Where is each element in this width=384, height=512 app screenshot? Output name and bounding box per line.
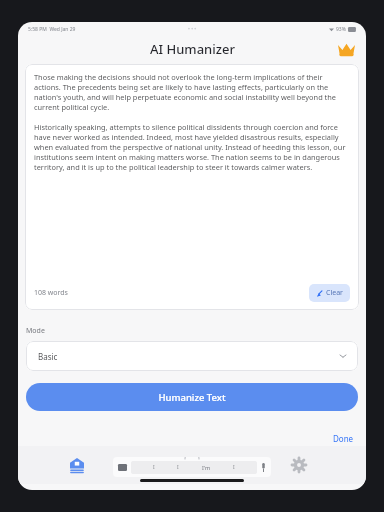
button[interactable]: Home <box>66 454 88 476</box>
staticText: Historically speaking, attempts to silen… <box>34 122 350 172</box>
button[interactable]: Those making the decisions should not ov… <box>25 64 359 310</box>
staticText: I'm <box>202 464 211 471</box>
staticText: 5:58 PM Wed Jan 29 <box>28 26 76 33</box>
button[interactable]: Premium <box>334 37 358 61</box>
staticText: 108 words <box>34 288 68 298</box>
staticText: I <box>153 464 155 471</box>
button[interactable]: Done <box>330 431 357 446</box>
button[interactable]: Settings <box>288 454 310 476</box>
staticText: I <box>177 464 179 471</box>
staticText: AI Humanizer <box>150 40 235 58</box>
staticText: I <box>233 464 235 471</box>
staticText: Done <box>333 433 354 444</box>
staticText: Humanize Text <box>158 391 226 404</box>
staticText: Those making the decisions should not ov… <box>34 72 350 112</box>
button[interactable]: Basic <box>26 341 358 371</box>
staticText: 93% <box>336 26 346 33</box>
button[interactable]: I <box>113 457 271 477</box>
button[interactable]: Clear <box>309 284 350 302</box>
staticText: • • • <box>188 26 197 33</box>
button[interactable]: Humanize Text <box>26 383 358 411</box>
staticText: Clear <box>326 288 343 298</box>
staticText: Mode <box>26 326 45 336</box>
staticText: Basic <box>38 351 58 362</box>
